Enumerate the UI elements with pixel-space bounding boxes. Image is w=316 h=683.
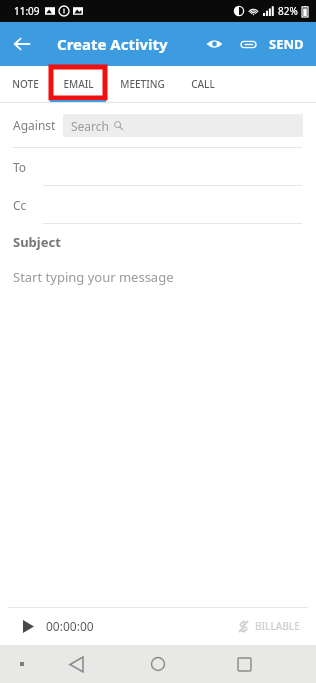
button[interactable]: Home	[144, 650, 172, 678]
staticText: 11:09	[14, 4, 40, 18]
staticText: CALL	[191, 77, 215, 91]
staticText: 82%	[278, 4, 298, 18]
staticText: BILLABLE	[255, 619, 300, 633]
button[interactable]: Attach	[231, 27, 265, 61]
button[interactable]: Search	[63, 114, 303, 137]
button[interactable]: MEETING	[106, 66, 178, 102]
other: Start timer	[18, 616, 38, 636]
staticText: Search	[71, 118, 109, 134]
button[interactable]: CALL	[178, 66, 228, 102]
button[interactable]: Start typing your message	[0, 260, 316, 294]
button[interactable]: To	[0, 148, 316, 186]
button[interactable]: EMAIL	[50, 66, 106, 102]
staticText: Against	[13, 117, 56, 133]
staticText: MEETING	[120, 77, 165, 91]
button[interactable]: Back	[62, 650, 90, 678]
button[interactable]: Cc	[0, 186, 316, 224]
button[interactable]: Subject	[0, 224, 316, 260]
staticText: EMAIL	[63, 77, 94, 91]
staticText: NOTE	[12, 77, 39, 91]
staticText: 00:00:00	[46, 618, 94, 634]
button[interactable]: Menu	[14, 656, 30, 672]
button[interactable]: SEND	[265, 22, 316, 66]
staticText: Cc	[13, 197, 27, 213]
button[interactable]: BILLABLE	[238, 619, 308, 633]
button[interactable]: Recent apps	[230, 650, 258, 678]
staticText: SEND	[269, 35, 304, 53]
staticText: To	[13, 159, 27, 175]
button[interactable]: Start timer	[8, 616, 94, 636]
button[interactable]: NOTE	[0, 66, 50, 102]
button[interactable]: Back	[0, 22, 44, 66]
staticText: Create Activity	[57, 34, 168, 54]
button[interactable]: Preview	[197, 27, 231, 61]
staticText: Start typing your message	[13, 268, 174, 286]
staticText: Subject	[13, 233, 61, 251]
